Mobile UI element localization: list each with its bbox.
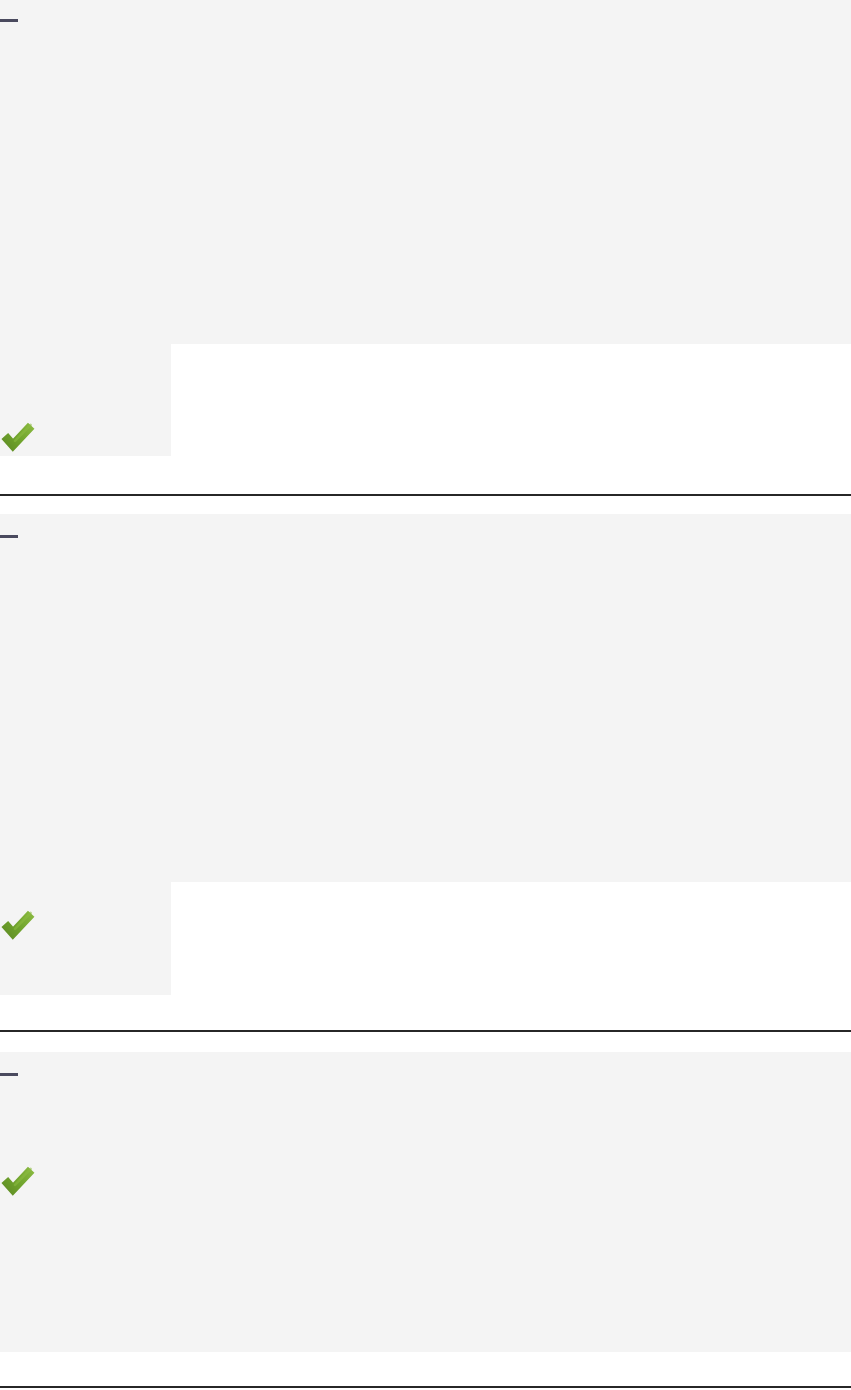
button[interactable]: Completed (0, 882, 171, 995)
other: Completed (3, 910, 33, 937)
button[interactable]: Completed (0, 344, 171, 456)
other: Completed (3, 422, 33, 449)
button[interactable]: Completed (0, 1052, 851, 1352)
other: Completed (3, 1166, 33, 1193)
